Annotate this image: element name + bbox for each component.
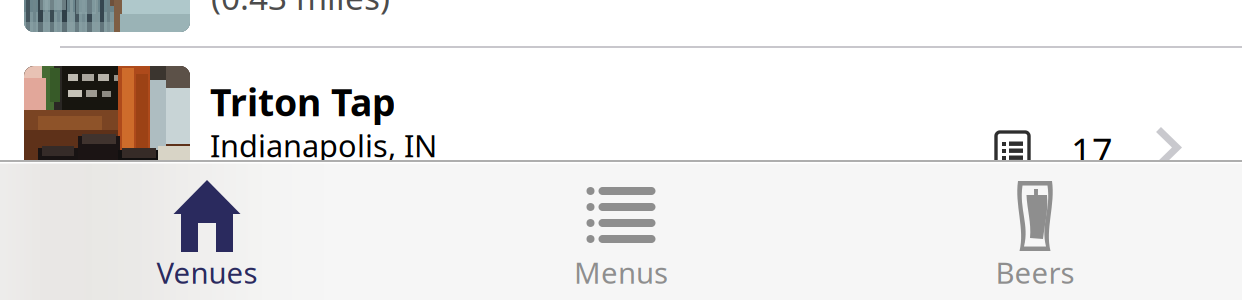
button[interactable]: (0.43 miles) <box>0 0 1242 300</box>
button[interactable]: Venues <box>0 161 414 300</box>
staticText: (0.43 miles) <box>211 0 390 19</box>
staticText: Menus <box>574 253 668 292</box>
staticText: 17 <box>1071 127 1113 175</box>
button[interactable]: Triton Tap <box>0 0 1242 300</box>
button[interactable]: Menus <box>414 161 828 300</box>
staticText: Triton Tap <box>210 77 396 127</box>
staticText: Venues <box>156 253 257 292</box>
button[interactable]: Beers <box>828 161 1242 300</box>
staticText: Beers <box>995 253 1074 292</box>
staticText: Indianapolis, IN <box>210 125 437 166</box>
